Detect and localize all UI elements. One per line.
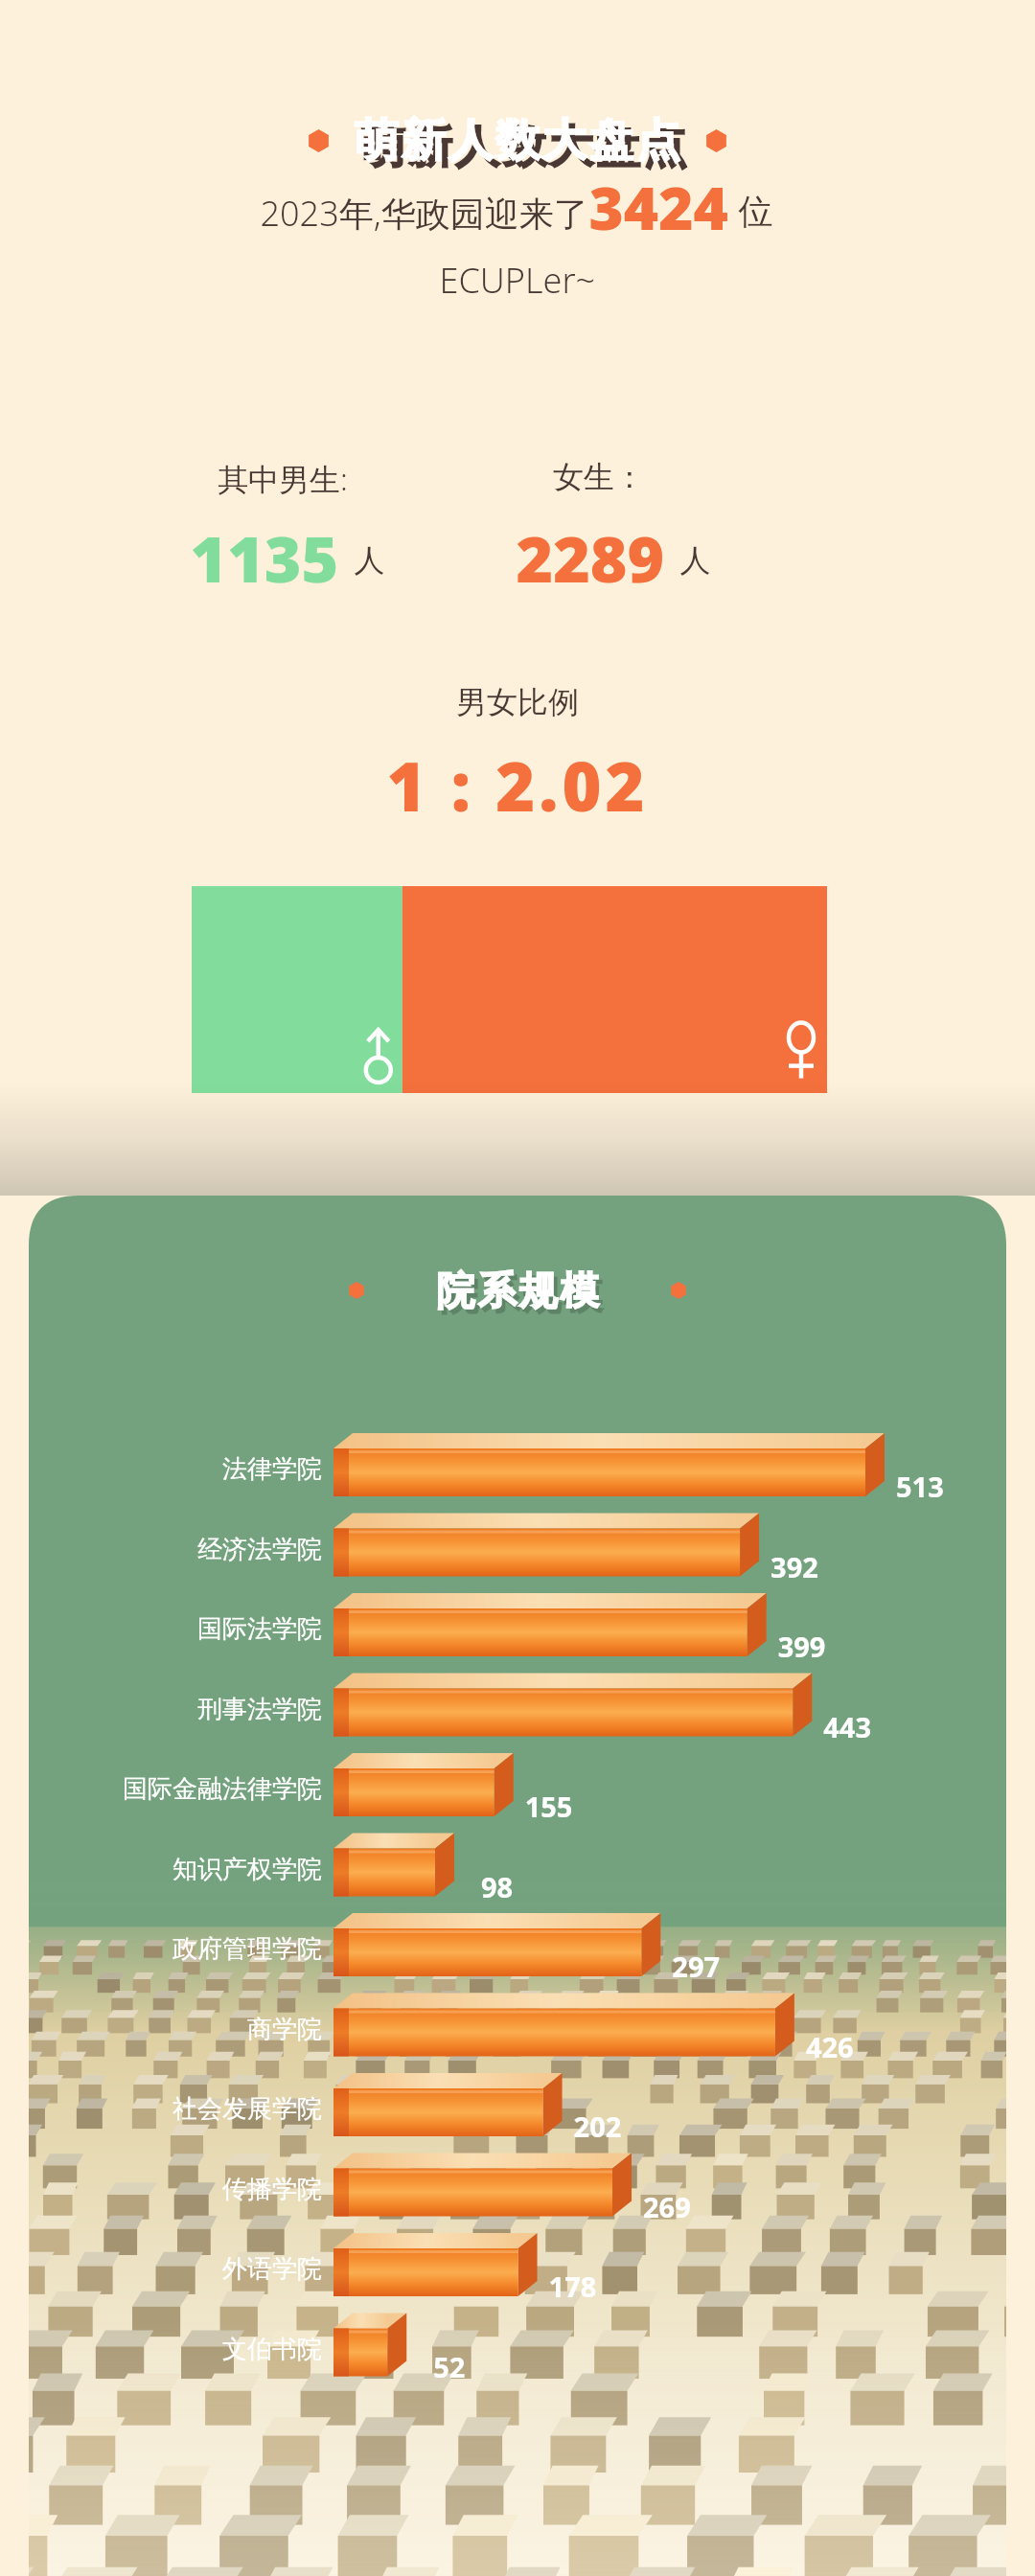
button[interactable]: 萌新人数大盘点 院系规模 infographic <box>0 0 1035 2576</box>
